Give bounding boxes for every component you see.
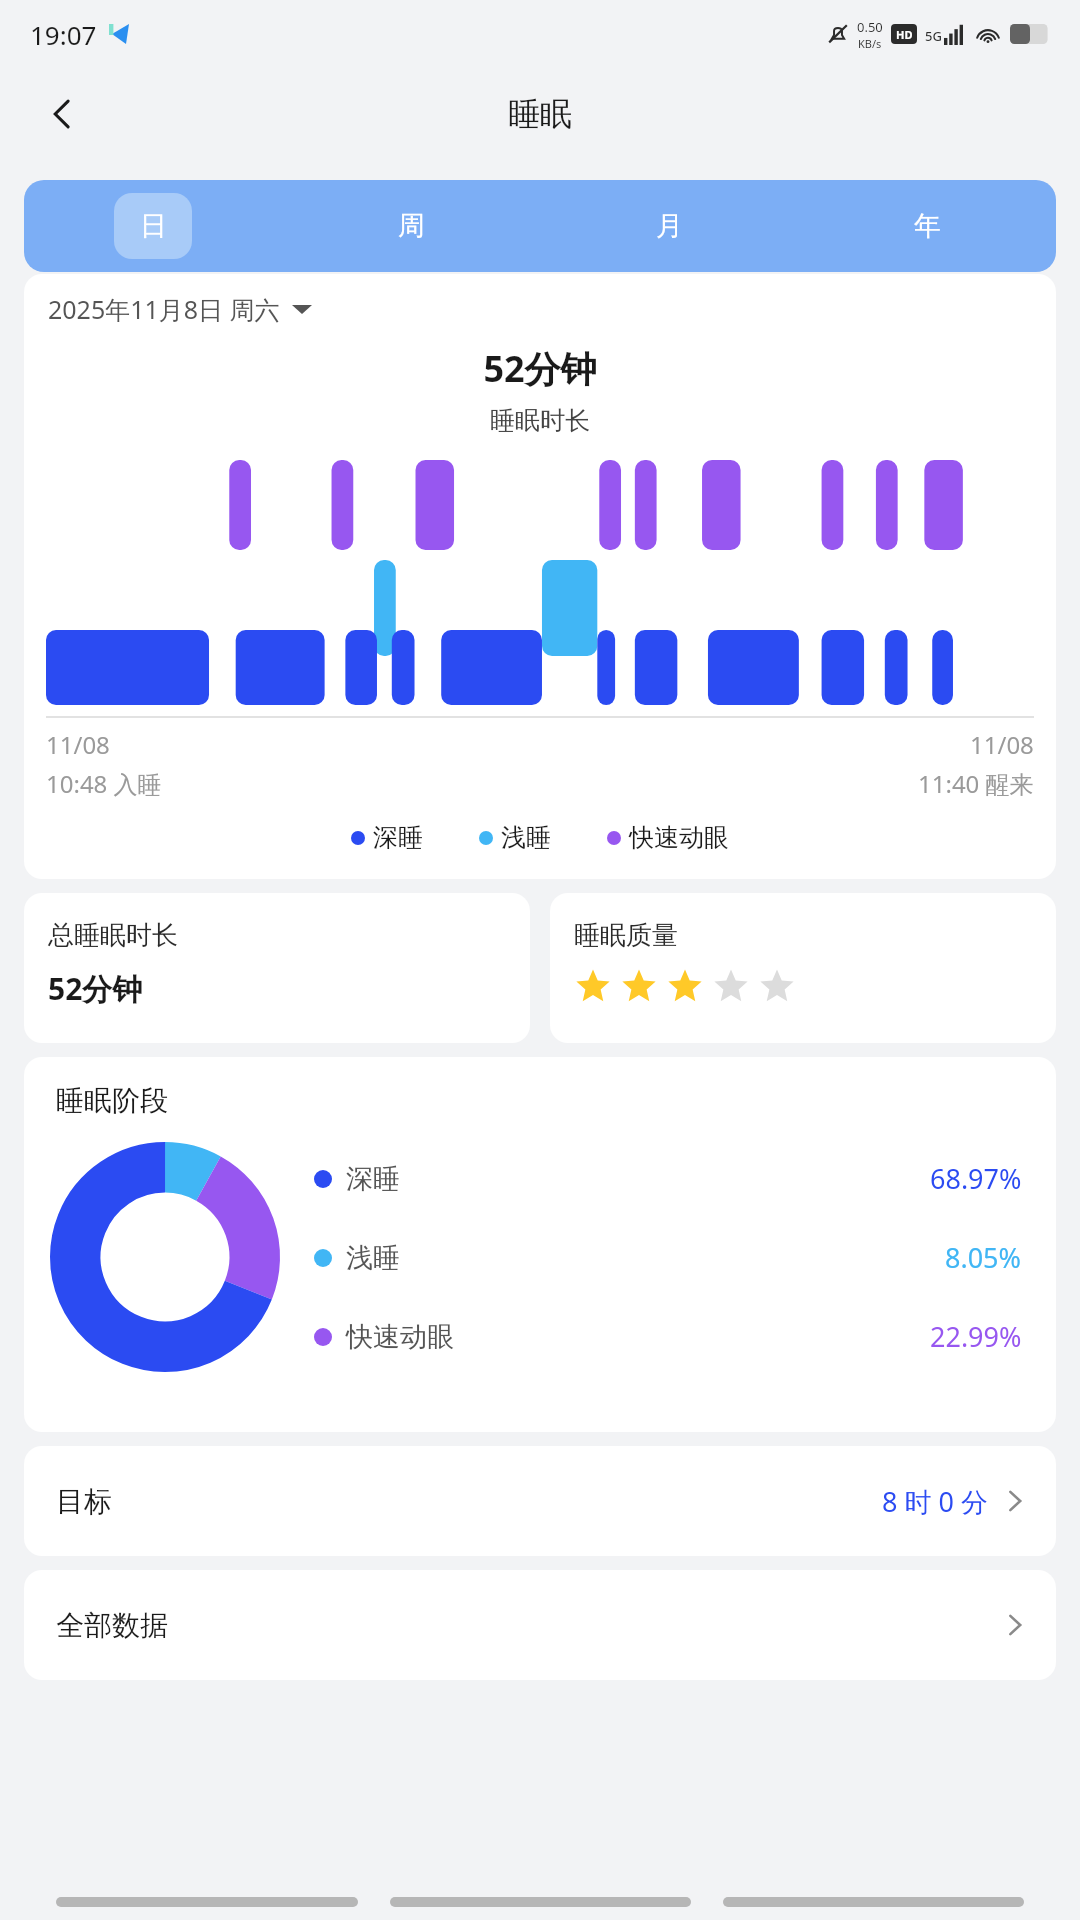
staticText: 日 — [140, 209, 167, 243]
staticText: 快速动眼 — [346, 1320, 454, 1354]
staticText: 睡眠阶段 — [56, 1083, 168, 1118]
staticText: 19:07 — [30, 17, 97, 52]
staticText: 睡眠质量 — [574, 919, 678, 952]
staticText: 52分钟 — [24, 344, 1056, 393]
button[interactable]: Back — [32, 84, 92, 144]
button[interactable]: 年 — [798, 180, 1056, 272]
staticText: HD — [896, 27, 913, 42]
button[interactable]: 睡眠质量 — [550, 893, 1056, 1043]
staticText: 10:48 入睡 — [46, 767, 162, 800]
staticText: 年 — [914, 209, 941, 243]
button[interactable]: Nav item — [56, 1897, 358, 1907]
button[interactable]: Nav item — [723, 1897, 1024, 1907]
staticText: 11/08 — [46, 728, 110, 761]
staticText: 5G — [925, 27, 942, 45]
staticText: 52分钟 — [48, 968, 143, 1009]
button[interactable]: 总睡眠时长 — [24, 893, 530, 1043]
staticText: 8 时 0 分 — [882, 1483, 988, 1520]
staticText: 快速动眼 — [629, 822, 729, 853]
staticText: 8.05% — [945, 1239, 1022, 1276]
staticText: KB/s — [858, 36, 882, 51]
staticText: 2025年11月8日 周六 — [48, 292, 280, 326]
button[interactable]: 月 — [540, 180, 798, 272]
button[interactable]: Nav item — [390, 1897, 691, 1907]
button[interactable]: 周 — [282, 180, 540, 272]
staticText: 11/08 — [970, 728, 1034, 761]
staticText: 浅睡 — [501, 822, 551, 853]
button[interactable]: 目标 — [24, 1446, 1056, 1556]
staticText: 深睡 — [346, 1162, 400, 1196]
staticText: 22.99% — [930, 1318, 1022, 1355]
staticText: 月 — [656, 209, 683, 243]
staticText: 浅睡 — [346, 1241, 400, 1275]
button[interactable]: 全部数据 — [24, 1570, 1056, 1680]
staticText: 11:40 醒来 — [918, 767, 1034, 800]
staticText: 周 — [398, 209, 425, 243]
staticText: 全部数据 — [56, 1608, 168, 1643]
staticText: 目标 — [56, 1484, 112, 1519]
staticText: 睡眠时长 — [24, 405, 1056, 436]
staticText: 深睡 — [373, 822, 423, 853]
staticText: 睡眠 — [508, 94, 572, 134]
staticText: 0.50 — [857, 18, 883, 36]
staticText: 68.97% — [930, 1160, 1022, 1197]
staticText: 总睡眠时长 — [48, 919, 178, 952]
button[interactable]: 日 — [24, 180, 282, 272]
button[interactable]: 2025年11月8日 周六 — [48, 292, 312, 326]
